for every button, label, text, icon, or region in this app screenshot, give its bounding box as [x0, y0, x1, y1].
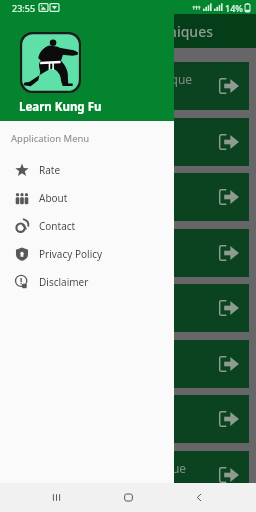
other: Home — [123, 492, 134, 503]
other: Recent apps — [51, 492, 62, 503]
staticText: Application Menu — [11, 132, 90, 145]
staticText: Privacy Policy — [39, 247, 103, 261]
staticText: Kung Fu Palm Strike Technique — [18, 71, 193, 87]
button[interactable]: Tiger Claw Strike Technique — [7, 284, 249, 332]
button[interactable]: Dragon Stance Drill — [7, 229, 249, 277]
button[interactable]: Crane Wing Block — [7, 173, 249, 221]
staticText: About — [39, 191, 68, 205]
other: Open technique — [219, 467, 239, 483]
other: Open technique — [219, 245, 239, 261]
staticText: Disclaimer — [39, 275, 89, 289]
other: Open technique — [219, 189, 239, 205]
staticText: Learn Kung Fu — [19, 99, 102, 115]
staticText: Crane Wing Block — [18, 182, 117, 198]
staticText: Dragon Stance Drill — [18, 238, 128, 254]
staticText: Rate — [39, 163, 61, 177]
button[interactable]: Contact — [0, 212, 174, 240]
staticText: Dragon Palm Block Technique — [18, 460, 187, 476]
button[interactable]: Dragon Palm Block Technique — [7, 451, 249, 499]
other: Open technique — [219, 134, 239, 150]
other: Open technique — [219, 356, 239, 372]
button[interactable]: Snake Hand Form — [7, 340, 249, 388]
button[interactable]: Monkey Step Drill — [7, 395, 249, 443]
staticText: Tiger Claw Strike — [18, 127, 113, 143]
staticText: Kung Fu Techniques — [79, 22, 213, 41]
button[interactable]: About — [0, 184, 174, 212]
staticText: 23:55 — [12, 2, 36, 14]
other: Back — [194, 492, 205, 503]
staticText: Contact — [39, 219, 76, 233]
button[interactable]: Disclaimer — [0, 268, 174, 296]
button[interactable]: Tiger Claw Strike — [7, 118, 249, 166]
other: Open technique — [219, 411, 239, 427]
other: Open technique — [219, 300, 239, 316]
staticText: 14% — [225, 2, 243, 14]
button[interactable]: Kung Fu Palm Strike Technique — [7, 62, 249, 110]
button[interactable]: Rate — [0, 156, 174, 184]
button[interactable]: Privacy Policy — [0, 240, 174, 268]
other: Open technique — [219, 78, 239, 94]
